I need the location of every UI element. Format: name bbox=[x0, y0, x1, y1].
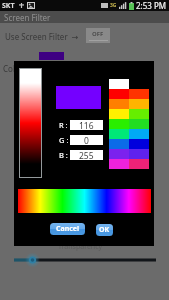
staticText: B : bbox=[59, 150, 68, 160]
staticText: 116 bbox=[79, 120, 94, 130]
staticText: OK bbox=[99, 225, 110, 235]
button[interactable]: R : bbox=[14, 61, 154, 246]
staticText: G : bbox=[59, 135, 69, 145]
button[interactable] bbox=[20, 69, 41, 177]
staticText: Color bbox=[3, 63, 24, 74]
staticText: Transparency bbox=[58, 242, 103, 252]
button[interactable]: Cancel bbox=[50, 223, 85, 235]
staticText: Use Screen Filter → bbox=[5, 31, 79, 42]
button[interactable]: 255 bbox=[70, 150, 103, 160]
button[interactable]: OFF bbox=[86, 28, 110, 43]
staticText: 3G bbox=[110, 2, 117, 9]
button[interactable]: OK bbox=[96, 224, 113, 236]
staticText: Cancel bbox=[56, 224, 80, 234]
staticText: 0 bbox=[84, 135, 89, 145]
button[interactable] bbox=[18, 189, 151, 213]
button[interactable]: 0 bbox=[70, 135, 103, 145]
staticText: SKT bbox=[2, 1, 15, 11]
staticText: 255 bbox=[79, 150, 94, 160]
staticText: Screen Filter bbox=[4, 12, 51, 23]
staticText: OFF bbox=[92, 30, 104, 38]
staticText: R : bbox=[59, 120, 68, 130]
staticText: 2:53 PM bbox=[136, 0, 167, 11]
button[interactable]: 116 bbox=[70, 120, 103, 130]
